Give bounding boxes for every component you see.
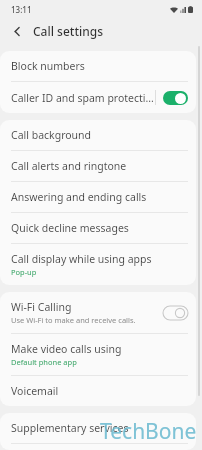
- staticText: Pop-up: [11, 267, 37, 277]
- staticText: Default phone app: [11, 357, 77, 367]
- button[interactable]: Caller ID and spam protection: [0, 82, 196, 113]
- button[interactable]: Answering and ending calls: [0, 182, 196, 212]
- button[interactable]: Call alerts and ringtone: [0, 151, 196, 181]
- button[interactable]: Wi-Fi Calling: [0, 292, 196, 333]
- button[interactable]: Block numbers: [0, 51, 196, 81]
- staticText: Block numbers: [11, 59, 85, 73]
- staticText: Make video calls using: [11, 342, 122, 356]
- button[interactable]: Wi-Fi Calling, off: [163, 306, 188, 320]
- staticText: Call settings: [33, 23, 104, 39]
- staticText: Voicemail: [11, 384, 59, 398]
- staticText: Supplementary services: [11, 421, 129, 435]
- staticText: Quick decline messages: [11, 221, 129, 235]
- staticText: Answering and ending calls: [11, 190, 147, 204]
- staticText: 13:11: [11, 4, 32, 15]
- staticText: Wi-Fi Calling: [11, 300, 72, 314]
- staticText: Call background: [11, 128, 92, 142]
- staticText: Call alerts and ringtone: [11, 159, 127, 173]
- button[interactable]: Back: [7, 21, 27, 41]
- staticText: TechBone: [100, 417, 197, 446]
- staticText: Call display while using apps: [11, 252, 152, 266]
- button[interactable]: Quick decline messages: [0, 213, 196, 243]
- button[interactable]: Voicemail: [0, 376, 196, 406]
- button[interactable]: Call display while using apps: [0, 244, 196, 285]
- button[interactable]: Caller ID and spam protection, on: [163, 91, 188, 105]
- staticText: Caller ID and spam protection: [11, 91, 155, 105]
- button[interactable]: Supplementary services: [0, 413, 196, 443]
- staticText: Use Wi-Fi to make and receive calls.: [11, 315, 136, 325]
- button[interactable]: Make video calls using: [0, 334, 196, 375]
- button[interactable]: Call background: [0, 120, 196, 150]
